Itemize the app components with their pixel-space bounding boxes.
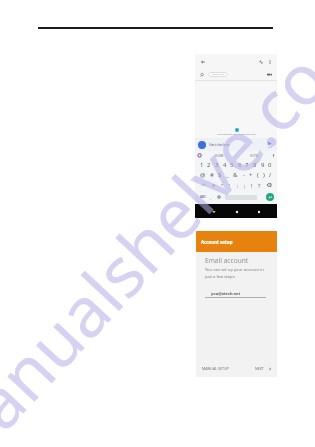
staticText: ! (251, 182, 253, 189)
staticText: / (269, 171, 272, 179)
staticText: : (237, 182, 239, 189)
staticText: Start chat here (209, 143, 230, 147)
staticText: ) (263, 171, 265, 179)
button[interactable]: Search (199, 72, 205, 78)
staticText: Search here (212, 73, 225, 76)
button[interactable]: Recent apps (254, 207, 263, 216)
staticText: 3 (215, 161, 219, 169)
staticText: HOME (215, 154, 224, 158)
other: Next (268, 367, 272, 371)
other: Emoji (217, 195, 221, 199)
staticText: Email account (205, 256, 249, 265)
staticText: - (243, 171, 245, 179)
staticText: ( (257, 171, 259, 179)
staticText: you@xtech.net (211, 291, 241, 296)
button[interactable]: Add (198, 141, 206, 149)
staticText: You can set up your account in just a fe… (205, 267, 264, 280)
staticText: HOTEL (250, 154, 260, 158)
staticText: 6 (238, 161, 242, 169)
staticText: , (210, 195, 212, 200)
staticText: " (221, 182, 224, 189)
button[interactable]: Home (232, 207, 241, 216)
staticText: + (249, 171, 253, 179)
button[interactable]: Call (257, 58, 264, 65)
staticText: Account setup (201, 239, 233, 245)
staticText: 5 (230, 161, 234, 169)
staticText: SMS (268, 146, 272, 149)
button[interactable]: MANUAL SETUP (202, 366, 229, 371)
other: Keyboard settings (272, 154, 275, 157)
button[interactable]: Enter (266, 193, 274, 201)
staticText: Your messages are secured end-to-end (217, 133, 256, 136)
staticText: NEXT (255, 366, 264, 371)
staticText: _ (226, 171, 229, 179)
staticText: $ (218, 171, 222, 179)
other: Backspace (267, 183, 271, 187)
staticText: 1 (200, 161, 204, 169)
staticText: MANUAL SETUP (202, 366, 229, 371)
staticText: @ (200, 171, 206, 179)
staticText: manualshelve.co (0, 32, 315, 447)
button[interactable]: More options (267, 59, 273, 65)
staticText: 0 (268, 161, 272, 169)
staticText: =\< (201, 183, 206, 187)
staticText: 4 (223, 161, 227, 169)
staticText: ; (244, 182, 246, 189)
button[interactable]: NEXT (255, 366, 272, 371)
staticText: ? (258, 182, 261, 189)
staticText: 8 (253, 161, 257, 169)
button[interactable]: Send SMS (264, 141, 275, 149)
staticText: 7 (245, 161, 249, 169)
staticText: * (212, 182, 216, 189)
button[interactable]: Back (200, 59, 206, 65)
button[interactable]: Back (209, 207, 218, 216)
staticText: 2 (207, 161, 211, 169)
button[interactable]: Search here (208, 72, 228, 77)
button[interactable]: Video call (266, 71, 273, 78)
staticText: ABC (200, 195, 207, 199)
staticText: ' (229, 182, 231, 189)
staticText: 9 (261, 161, 265, 169)
staticText: & (233, 171, 238, 179)
staticText: # (210, 171, 214, 179)
